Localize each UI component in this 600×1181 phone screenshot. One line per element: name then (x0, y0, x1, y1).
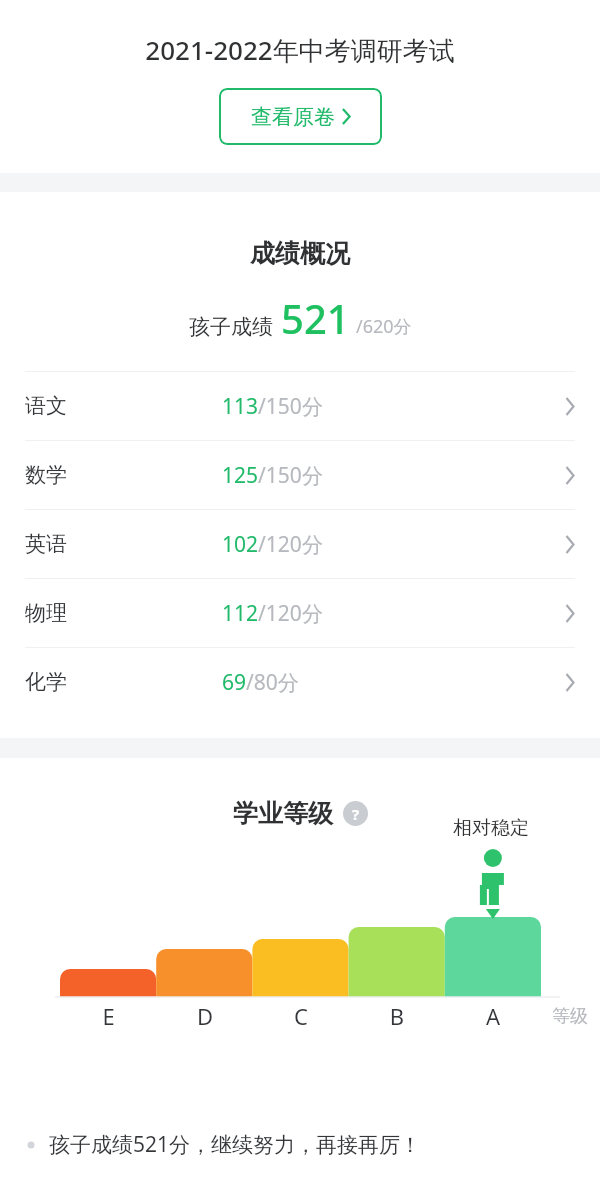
staticText: 等级 (552, 1005, 588, 1028)
staticText: 查看原卷 (251, 104, 335, 130)
staticText: 物理 (25, 600, 67, 626)
staticText: 112/120分 (222, 599, 323, 628)
staticText: 102/120分 (222, 530, 323, 559)
staticText: E (60, 1001, 157, 1031)
button[interactable]: 查看原卷 (219, 88, 382, 145)
staticText: 113/150分 (222, 392, 323, 421)
staticText: 孩子成绩521分，继续努力，再接再厉！ (49, 1130, 422, 1159)
staticText: D (157, 1001, 253, 1031)
staticText: 69/80分 (222, 668, 299, 697)
staticText: 学业等级 (233, 798, 333, 829)
button[interactable]: 数学 (0, 441, 600, 509)
staticText: 成绩概况 (0, 238, 600, 269)
staticText: 相对稳定 (453, 816, 529, 840)
staticText: /620分 (356, 314, 412, 339)
staticText: 化学 (25, 669, 67, 695)
staticText: 2021-2022年中考调研考试 (0, 32, 600, 68)
staticText: 数学 (25, 462, 67, 488)
staticText: 521 (281, 291, 350, 345)
staticText: ? (352, 804, 360, 824)
staticText: B (349, 1001, 445, 1031)
staticText: A (445, 1001, 541, 1031)
button[interactable]: 物理 (0, 579, 600, 647)
staticText: 孩子成绩 (189, 314, 273, 340)
staticText: 语文 (25, 393, 67, 419)
button[interactable]: 英语 (0, 510, 600, 578)
button[interactable]: 语文 (0, 372, 600, 440)
staticText: 英语 (25, 531, 67, 557)
button[interactable]: 帮助 (343, 801, 368, 826)
staticText: C (253, 1001, 349, 1031)
staticText: 125/150分 (222, 461, 323, 490)
button[interactable]: 化学 (0, 648, 600, 716)
